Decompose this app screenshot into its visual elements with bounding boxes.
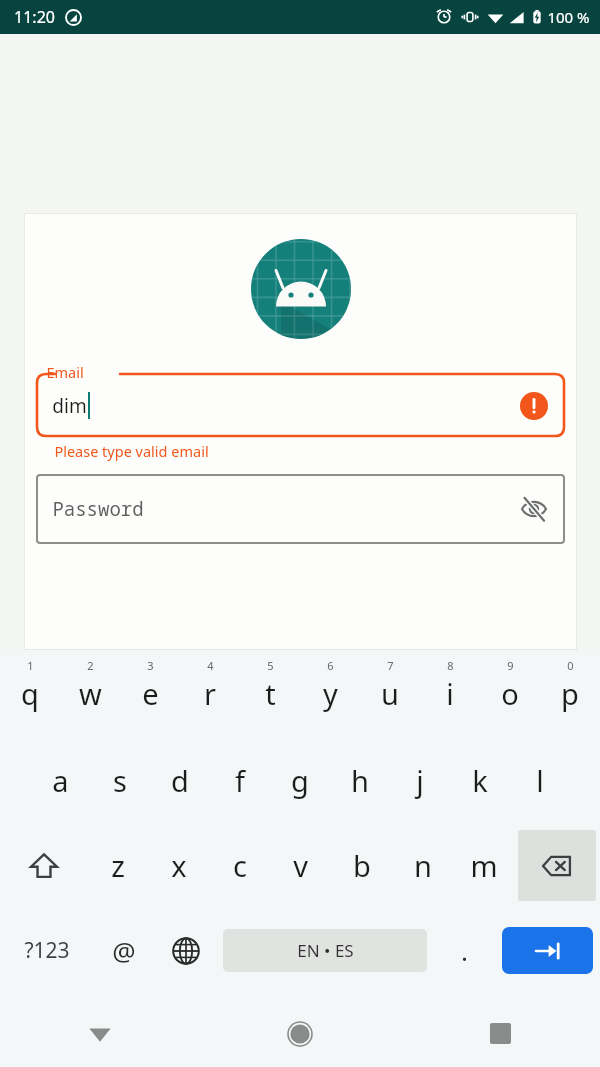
staticText: q: [21, 674, 39, 713]
staticText: 0: [567, 658, 574, 673]
button[interactable]: g: [270, 738, 330, 823]
button[interactable]: Recent apps: [400, 1000, 600, 1067]
button[interactable]: z: [87, 823, 148, 908]
staticText: Email: [46, 362, 84, 382]
button[interactable]: Backspace: [518, 830, 596, 901]
staticText: g: [291, 761, 309, 800]
staticText: 1: [27, 658, 34, 673]
staticText: f: [235, 761, 245, 800]
button[interactable]: 5: [240, 655, 300, 738]
staticText: .: [461, 933, 468, 968]
staticText: Please type valid email: [54, 441, 209, 461]
staticText: n: [414, 846, 432, 885]
button[interactable]: k: [450, 738, 510, 823]
button[interactable]: Home: [200, 1000, 400, 1067]
staticText: 5: [267, 658, 274, 673]
button[interactable]: EN • ES: [223, 929, 427, 972]
staticText: 3: [147, 658, 154, 673]
staticText: Password: [52, 496, 144, 522]
staticText: u: [381, 674, 399, 713]
staticText: t: [265, 674, 276, 713]
button[interactable]: f: [210, 738, 270, 823]
button[interactable]: @: [93, 908, 155, 993]
staticText: EN • ES: [297, 939, 354, 962]
staticText: o: [501, 674, 519, 713]
button[interactable]: .: [433, 908, 495, 993]
button[interactable]: Show password: [517, 492, 551, 526]
staticText: b: [353, 846, 371, 885]
button[interactable]: Next: [502, 927, 593, 974]
staticText: 8: [447, 658, 454, 673]
button[interactable]: n: [392, 823, 453, 908]
button[interactable]: Change keyboard language: [155, 908, 217, 993]
staticText: m: [470, 846, 498, 885]
button[interactable]: a: [30, 738, 90, 823]
staticText: d: [171, 761, 189, 800]
staticText: @: [112, 933, 136, 968]
button[interactable]: d: [150, 738, 210, 823]
button[interactable]: c: [209, 823, 270, 908]
button[interactable]: h: [330, 738, 390, 823]
staticText: ?123: [24, 936, 70, 965]
button[interactable]: j: [390, 738, 450, 823]
staticText: 11:20: [14, 6, 55, 28]
button[interactable]: 3: [120, 655, 180, 738]
staticText: j: [416, 761, 424, 800]
button[interactable]: b: [331, 823, 392, 908]
staticText: s: [113, 761, 127, 800]
staticText: 2: [87, 658, 94, 673]
staticText: z: [111, 846, 125, 885]
staticText: x: [171, 846, 187, 885]
staticText: k: [472, 761, 488, 800]
button[interactable]: 2: [60, 655, 120, 738]
staticText: dim: [52, 393, 87, 419]
staticText: a: [52, 761, 69, 800]
button[interactable]: m: [453, 823, 514, 908]
button[interactable]: Hide keyboard: [0, 1000, 200, 1067]
staticText: i: [446, 674, 454, 713]
staticText: p: [561, 674, 579, 713]
staticText: 100 %: [547, 7, 590, 27]
staticText: 9: [507, 658, 514, 673]
button[interactable]: Shift: [0, 823, 87, 908]
button[interactable]: x: [148, 823, 209, 908]
staticText: c: [233, 846, 247, 885]
staticText: h: [351, 761, 369, 800]
staticText: r: [204, 674, 216, 713]
button[interactable]: 4: [180, 655, 240, 738]
button[interactable]: 0: [540, 655, 600, 738]
staticText: v: [293, 846, 308, 885]
staticText: w: [79, 674, 102, 713]
button[interactable]: l: [510, 738, 570, 823]
staticText: l: [536, 761, 544, 800]
button[interactable]: Email: [36, 362, 565, 437]
button[interactable]: 7: [360, 655, 420, 738]
staticText: e: [142, 674, 159, 713]
staticText: y: [323, 674, 338, 713]
button[interactable]: Password: [36, 474, 565, 544]
staticText: 6: [327, 658, 334, 673]
button[interactable]: v: [270, 823, 331, 908]
button[interactable]: ?123: [0, 908, 93, 993]
button[interactable]: 9: [480, 655, 540, 738]
button[interactable]: 8: [420, 655, 480, 738]
button[interactable]: 6: [300, 655, 360, 738]
button[interactable]: s: [90, 738, 150, 823]
button[interactable]: 1: [0, 655, 60, 738]
staticText: 7: [387, 658, 394, 673]
staticText: 4: [207, 658, 214, 673]
